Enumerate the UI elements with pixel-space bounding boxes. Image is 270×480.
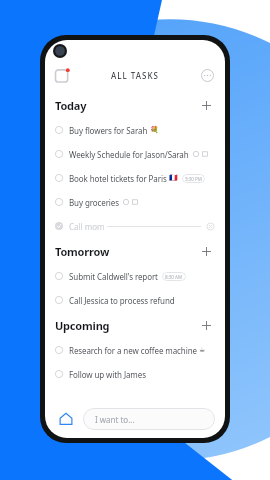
- button[interactable]: Add task to Upcoming: [197, 316, 215, 334]
- button[interactable]: More options: [197, 65, 217, 85]
- button[interactable]: Buy flowers for Sarah: [55, 118, 215, 142]
- staticText: Call mom: [69, 221, 105, 232]
- staticText: 💐: [150, 126, 159, 134]
- staticText: ☕: [199, 346, 206, 354]
- staticText: Call Jessica to process refund: [69, 295, 175, 306]
- staticText: 3:30 PM: [185, 176, 202, 182]
- staticText: Tomorrow: [55, 244, 110, 259]
- button[interactable]: Submit Caldwell's report: [55, 264, 215, 288]
- button[interactable]: Weekly Schedule for Jason/Sarah: [55, 142, 215, 166]
- button[interactable]: Book hotel tickets for Paris: [55, 166, 215, 190]
- staticText: Buy flowers for Sarah: [69, 125, 148, 136]
- button[interactable]: Add task to Tomorrow: [197, 242, 215, 260]
- staticText: ALL TASKS: [111, 70, 159, 81]
- staticText: Book hotel tickets for Paris: [69, 173, 167, 184]
- staticText: Submit Caldwell's report: [69, 271, 158, 282]
- staticText: 🇫🇷: [169, 174, 178, 182]
- button[interactable]: Research for a new coffee machine: [55, 338, 215, 362]
- button[interactable]: Home: [55, 408, 77, 430]
- staticText: I want to...: [95, 414, 135, 425]
- button[interactable]: Inbox: [53, 65, 73, 85]
- button[interactable]: Buy groceries: [55, 190, 215, 214]
- staticText: Research for a new coffee machine: [69, 345, 197, 356]
- staticText: Upcoming: [55, 318, 110, 333]
- button[interactable]: Call Jessica to process refund: [55, 288, 215, 312]
- staticText: Today: [55, 98, 87, 113]
- button[interactable]: Follow up with James: [55, 362, 215, 386]
- staticText: Buy groceries: [69, 197, 119, 208]
- staticText: 8:30 AM: [165, 274, 183, 280]
- staticText: Weekly Schedule for Jason/Sarah: [69, 149, 189, 160]
- staticText: Follow up with James: [69, 369, 146, 380]
- button[interactable]: Remove task: [205, 221, 215, 231]
- button[interactable]: Call mom: [55, 214, 215, 238]
- button[interactable]: Add task to Today: [197, 96, 215, 114]
- button[interactable]: I want to...: [83, 408, 215, 430]
